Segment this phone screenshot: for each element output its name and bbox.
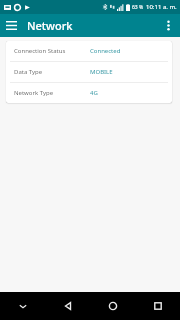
button[interactable]: Connection Status [6, 41, 172, 61]
staticText: MOBILE [90, 68, 166, 76]
staticText: 4G [90, 89, 166, 97]
staticText: Connected [90, 47, 166, 55]
staticText: 63 % [132, 4, 144, 11]
button[interactable]: Back [45, 292, 90, 320]
staticText: Network Type [14, 89, 90, 97]
button[interactable]: Network Type [6, 83, 172, 103]
staticText: Data Type [14, 68, 90, 76]
button[interactable]: Home [90, 292, 135, 320]
button[interactable]: Open navigation drawer [0, 14, 23, 37]
button[interactable]: Hide keyboard [0, 292, 45, 320]
staticText: 10:11 a. m. [146, 3, 177, 11]
staticText: Connection Status [14, 47, 90, 55]
button[interactable]: Data Type [6, 62, 172, 82]
button[interactable]: More options [157, 14, 180, 37]
button[interactable]: Recent apps [135, 292, 180, 320]
staticText: Network [27, 18, 73, 33]
